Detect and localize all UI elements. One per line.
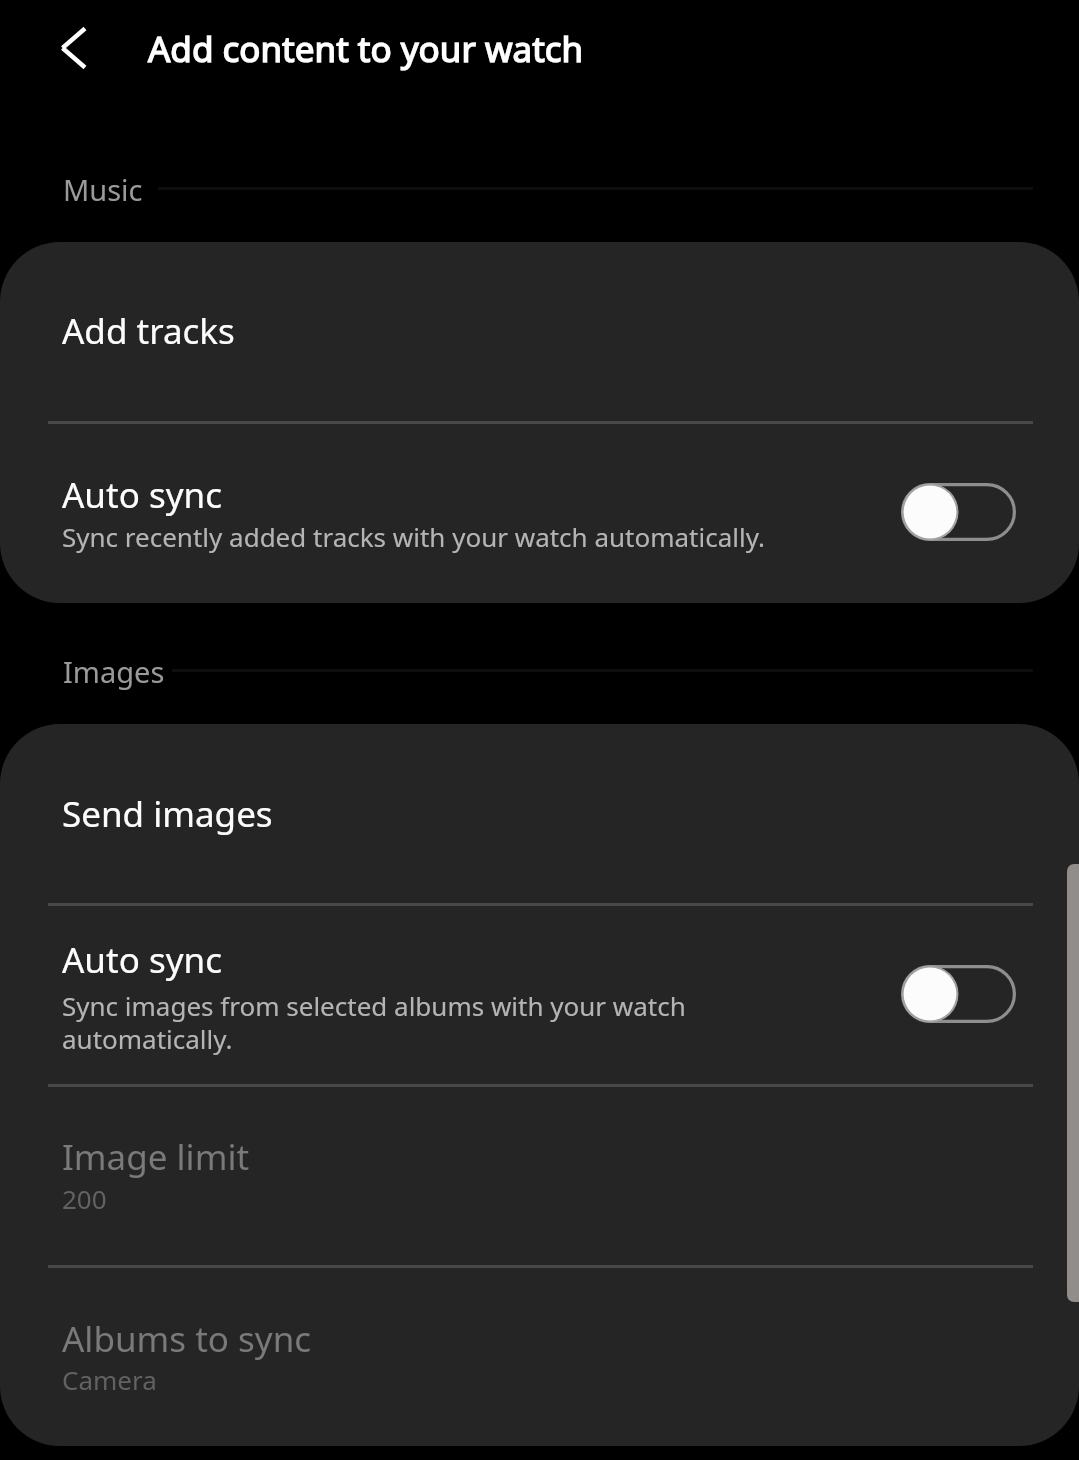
button[interactable]: Auto sync bbox=[901, 965, 1016, 1023]
button[interactable]: Send images bbox=[0, 724, 1079, 903]
staticText: 200 bbox=[62, 1183, 107, 1216]
staticText: Add content to your watch bbox=[148, 25, 584, 73]
button[interactable]: Navigate up bbox=[36, 9, 116, 89]
staticText: Albums to sync bbox=[62, 1316, 312, 1362]
button[interactable]: Auto sync bbox=[0, 906, 1079, 1084]
button[interactable]: Albums to sync bbox=[0, 1268, 1079, 1446]
staticText: Music bbox=[63, 170, 143, 209]
staticText: Camera bbox=[62, 1364, 157, 1397]
staticText: Images bbox=[63, 652, 165, 691]
staticText: Sync images from selected albums with yo… bbox=[62, 990, 722, 1056]
staticText: Send images bbox=[62, 791, 273, 837]
button[interactable]: Auto sync bbox=[901, 483, 1016, 541]
button[interactable]: Image limit bbox=[0, 1087, 1079, 1265]
staticText: Image limit bbox=[62, 1134, 250, 1180]
staticText: Auto sync bbox=[62, 937, 222, 983]
button[interactable]: Add tracks bbox=[0, 242, 1079, 421]
staticText: Add tracks bbox=[62, 308, 235, 354]
staticText: Auto sync bbox=[62, 472, 222, 518]
staticText: Sync recently added tracks with your wat… bbox=[62, 521, 765, 554]
button[interactable]: Auto sync bbox=[0, 424, 1079, 603]
